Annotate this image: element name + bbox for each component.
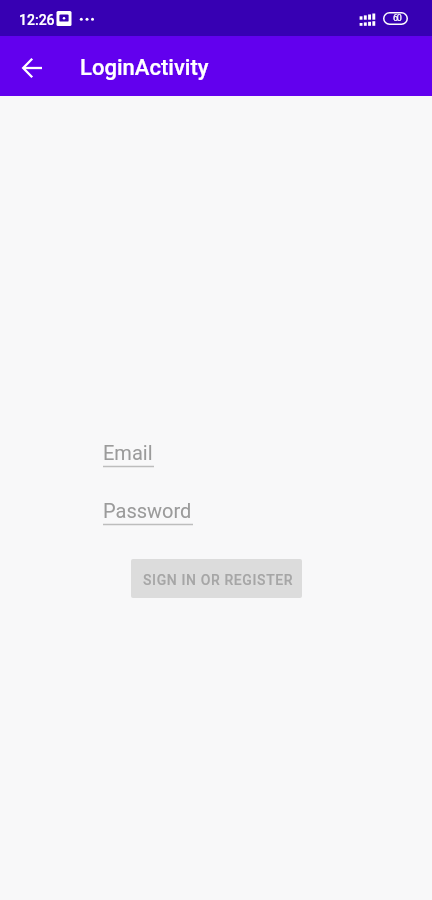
button[interactable]: Email xyxy=(103,441,333,472)
staticText: Email xyxy=(103,441,153,464)
button[interactable]: SIGN IN OR REGISTER xyxy=(131,559,302,598)
staticText: LoginActivity xyxy=(80,55,209,81)
staticText: 12:26 xyxy=(19,12,55,28)
button[interactable]: Password xyxy=(103,499,333,530)
staticText: SIGN IN OR REGISTER xyxy=(143,572,294,588)
staticText: Password xyxy=(103,499,192,522)
button[interactable]: Navigate up xyxy=(9,45,55,91)
staticText: 60 xyxy=(393,13,401,24)
